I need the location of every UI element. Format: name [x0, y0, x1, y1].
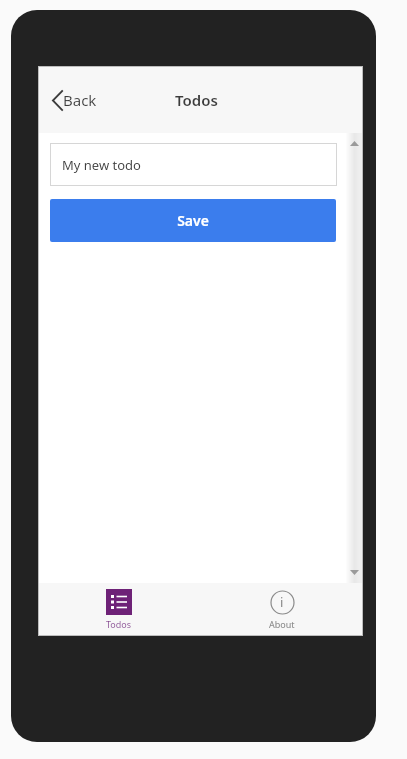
staticText: Back: [63, 90, 97, 110]
button[interactable]: Todos: [102, 585, 136, 634]
staticText: Save: [177, 211, 209, 230]
button[interactable]: Save: [50, 199, 336, 242]
staticText: Todos: [106, 618, 132, 630]
staticText: About: [269, 618, 295, 630]
staticText: i: [280, 593, 284, 611]
staticText: My new todo: [62, 156, 141, 174]
other: Scrollbar: [346, 133, 363, 583]
button[interactable]: i: [265, 585, 299, 634]
staticText: Todos: [175, 90, 218, 110]
button[interactable]: My new todo: [50, 143, 337, 186]
button[interactable]: Back: [48, 84, 101, 116]
